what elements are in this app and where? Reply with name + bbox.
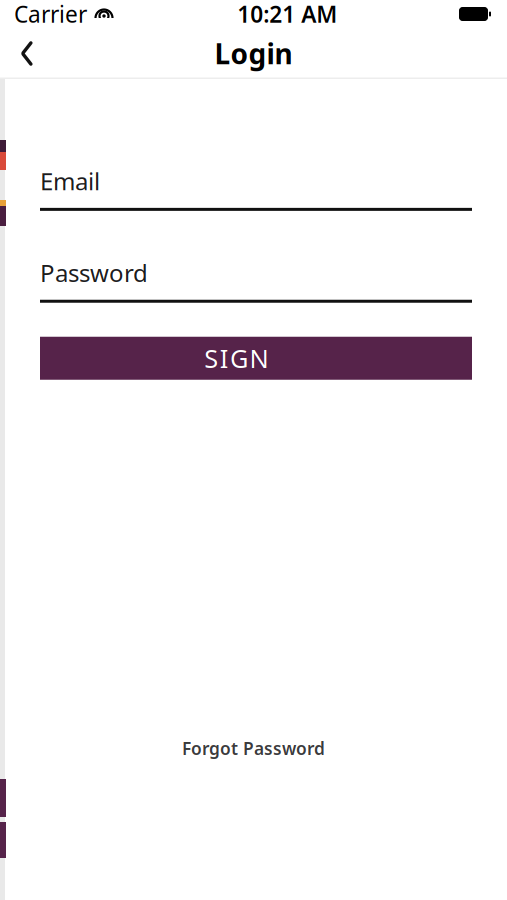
staticText: Email	[40, 165, 100, 197]
staticText: Login	[214, 35, 292, 72]
staticText: Password	[40, 257, 148, 289]
button[interactable]: Back	[0, 28, 54, 79]
staticText: 10:21 AM	[237, 0, 337, 29]
staticText: Forgot Password	[182, 737, 325, 760]
button[interactable]: SIGN IN	[40, 337, 472, 380]
staticText: SIGN IN	[204, 341, 308, 375]
button[interactable]: Forgot Password	[168, 729, 339, 768]
staticText: Carrier	[14, 0, 87, 29]
